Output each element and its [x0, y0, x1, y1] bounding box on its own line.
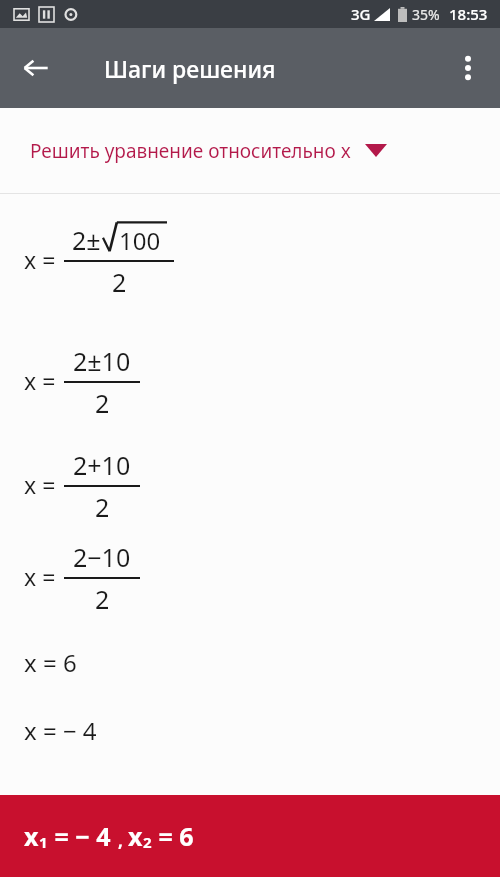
button[interactable]: x	[0, 795, 500, 877]
button[interactable]: x =	[0, 540, 500, 612]
staticText: x =	[24, 469, 56, 500]
staticText: x =	[24, 561, 56, 592]
staticText: x = − 4	[24, 714, 97, 747]
staticText: Шаги решения	[104, 53, 276, 84]
staticText: x	[128, 819, 143, 853]
staticText: x = 6	[24, 646, 77, 679]
button[interactable]: More options	[444, 44, 492, 92]
staticText: 35%	[412, 5, 440, 24]
staticText: 2	[143, 832, 152, 852]
staticText: 100	[119, 224, 161, 257]
button[interactable]: x =	[0, 448, 500, 520]
button[interactable]: Решить уравнение относительно x	[0, 108, 500, 193]
staticText: ,	[118, 829, 128, 852]
button[interactable]: Back	[12, 44, 60, 92]
staticText: 2±	[72, 223, 101, 257]
button[interactable]: x = 6	[0, 642, 500, 682]
staticText: 2+10	[73, 448, 131, 482]
staticText: 2	[112, 265, 127, 299]
staticText: 2	[95, 490, 110, 520]
staticText: x =	[24, 365, 56, 396]
staticText: 2−10	[73, 540, 131, 574]
staticText: x =	[24, 244, 56, 275]
button[interactable]: x =	[0, 216, 500, 302]
staticText: 1	[39, 832, 48, 852]
button[interactable]: x = − 4	[0, 710, 500, 750]
staticText: Решить уравнение относительно x	[30, 138, 351, 164]
staticText: = 6	[152, 819, 194, 853]
staticText: x	[24, 819, 39, 853]
staticText: = − 4	[48, 819, 118, 853]
staticText: 2	[95, 386, 110, 416]
staticText: 18:53	[449, 4, 488, 24]
staticText: 3G	[351, 4, 371, 24]
button[interactable]: x =	[0, 344, 500, 416]
staticText: 2±10	[73, 344, 131, 378]
staticText: 2	[95, 582, 110, 612]
